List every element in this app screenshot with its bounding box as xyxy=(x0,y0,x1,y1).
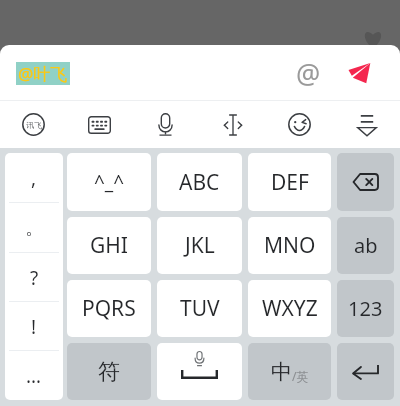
staticText: /英 xyxy=(292,368,309,384)
button[interactable]: , xyxy=(5,153,63,203)
button[interactable]: Move cursor xyxy=(199,101,266,148)
staticText: ABC xyxy=(179,168,220,197)
button[interactable]: 符 xyxy=(67,343,151,400)
button[interactable]: 。 xyxy=(5,203,63,253)
button[interactable]: Backspace xyxy=(337,153,394,211)
button[interactable]: JKL xyxy=(157,217,242,274)
button[interactable]: Hide keyboard xyxy=(333,101,400,148)
button[interactable]: Chinese English toggle xyxy=(248,343,331,400)
button[interactable]: Space xyxy=(157,343,242,400)
staticText: ab xyxy=(354,232,378,259)
button[interactable]: Voice assistant xyxy=(0,101,66,148)
staticText: TUV xyxy=(180,294,220,323)
staticText: , xyxy=(31,165,37,191)
button[interactable]: Enter xyxy=(337,343,394,400)
staticText: @ xyxy=(296,55,321,92)
button[interactable]: MNO xyxy=(248,217,331,274)
staticText: 。 xyxy=(25,216,44,240)
button[interactable]: Mention someone xyxy=(288,53,328,93)
staticText: … xyxy=(26,363,42,389)
staticText: 符 xyxy=(98,358,120,386)
button[interactable]: WXYZ xyxy=(248,280,331,337)
staticText: MNO xyxy=(264,231,316,260)
button[interactable]: ABC xyxy=(157,153,242,211)
button[interactable]: @叶飞 xyxy=(16,62,70,85)
staticText: ? xyxy=(30,265,39,291)
button[interactable]: ab xyxy=(337,217,394,274)
button[interactable]: ? xyxy=(5,253,63,302)
button[interactable]: Keyboard layout xyxy=(66,101,132,148)
button[interactable]: GHI xyxy=(67,217,151,274)
button[interactable]: Voice input xyxy=(132,101,199,148)
staticText: ! xyxy=(31,314,37,340)
button[interactable]: ^_^ xyxy=(67,153,151,211)
button[interactable]: Emoji xyxy=(266,101,333,148)
staticText: DEF xyxy=(271,168,309,197)
button[interactable]: … xyxy=(5,351,63,400)
staticText: WXYZ xyxy=(262,294,318,323)
button[interactable]: TUV xyxy=(157,280,242,337)
staticText: PQRS xyxy=(82,294,136,323)
staticText: @叶飞 xyxy=(18,62,68,85)
button[interactable]: ! xyxy=(5,302,63,351)
button[interactable]: PQRS xyxy=(67,280,151,337)
staticText: GHI xyxy=(90,231,128,260)
staticText: 中 xyxy=(271,359,292,385)
staticText: ^_^ xyxy=(94,169,125,195)
staticText: 讯飞 xyxy=(26,120,42,130)
staticText: 123 xyxy=(348,295,383,322)
button[interactable]: DEF xyxy=(248,153,331,211)
button[interactable]: 123 xyxy=(337,280,394,337)
staticText: JKL xyxy=(185,231,215,260)
button[interactable]: Send xyxy=(340,53,380,93)
